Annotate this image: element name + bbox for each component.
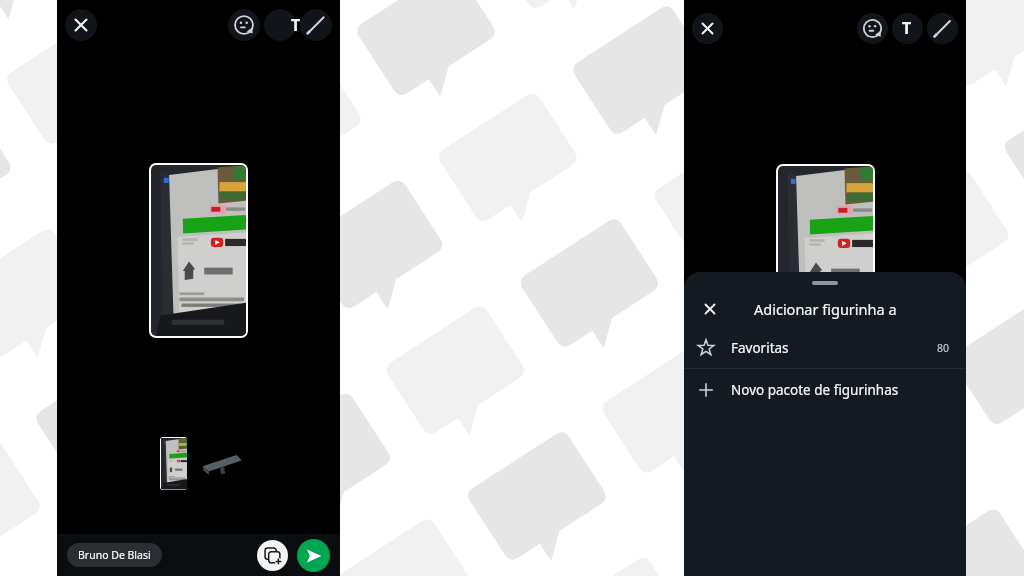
button[interactable]: Add text <box>892 13 923 44</box>
staticText: Bruno De Blasi <box>78 548 151 562</box>
button[interactable] <box>161 438 186 489</box>
button[interactable]: Bruno De Blasi <box>67 543 162 567</box>
button[interactable]: Favoritas <box>684 328 966 368</box>
button[interactable]: Add to sticker pack <box>257 540 288 571</box>
button[interactable]: Send <box>297 539 330 572</box>
button[interactable]: Sticker <box>857 13 888 44</box>
button[interactable] <box>201 452 243 478</box>
staticText: Adicionar figurinha a <box>754 299 897 319</box>
button[interactable]: Close <box>65 9 97 41</box>
button[interactable]: Close <box>692 13 723 44</box>
button[interactable]: Draw <box>300 9 332 41</box>
staticText: Novo pacote de figurinhas <box>731 381 899 399</box>
staticText: Favoritas <box>731 339 789 357</box>
button[interactable]: Close sheet <box>697 296 723 322</box>
button[interactable]: Novo pacote de figurinhas <box>684 369 966 410</box>
button[interactable]: Add text <box>264 9 296 41</box>
staticText: T <box>902 17 912 39</box>
button[interactable]: Draw <box>927 13 958 44</box>
button[interactable]: Sticker <box>228 9 260 41</box>
staticText: T <box>291 14 301 36</box>
staticText: 80 <box>937 341 950 355</box>
